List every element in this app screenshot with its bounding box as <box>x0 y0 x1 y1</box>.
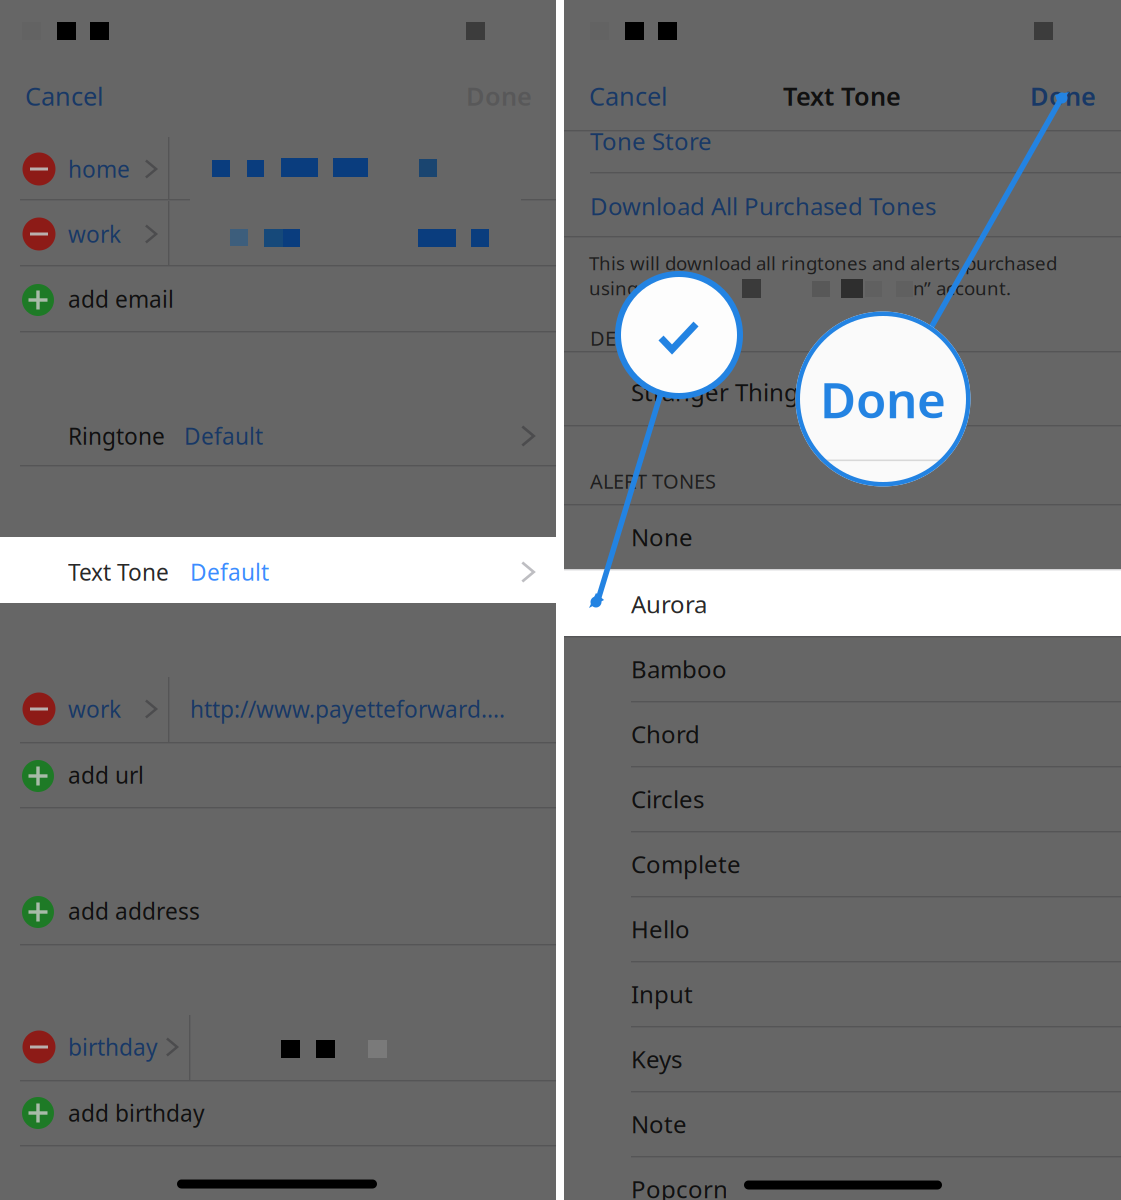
staticText: Popcorn <box>631 1173 728 1200</box>
button[interactable]: None <box>564 504 1121 569</box>
button[interactable]: Remove birthday <box>22 1030 55 1063</box>
staticText: http://www.payetteforward.... <box>190 694 505 724</box>
staticText: Aurora <box>631 588 707 620</box>
button[interactable]: Complete <box>564 831 1121 896</box>
button[interactable]: Text Tone <box>0 537 556 603</box>
button[interactable]: add address <box>0 879 556 944</box>
staticText: Bamboo <box>631 653 727 685</box>
staticText: add email <box>68 284 174 314</box>
staticText: ALERT TONES <box>590 468 716 494</box>
button[interactable]: Chord <box>564 701 1121 766</box>
button[interactable]: Bamboo <box>564 636 1121 701</box>
button[interactable]: Remove home email <box>22 152 55 185</box>
button[interactable]: Done <box>795 311 970 486</box>
button[interactable]: add birthday <box>0 1081 556 1145</box>
button[interactable]: Done <box>452 74 546 120</box>
staticText: Ringtone <box>68 421 165 451</box>
staticText: using the “ <box>589 276 685 300</box>
staticText: None <box>631 521 693 553</box>
button[interactable]: Add birthday <box>22 1097 54 1129</box>
staticText: Complete <box>631 848 741 880</box>
staticText: Keys <box>631 1043 682 1075</box>
button[interactable]: add email <box>0 266 556 331</box>
button[interactable]: Remove work email <box>22 217 55 250</box>
staticText: work <box>68 219 121 249</box>
button[interactable]: Note <box>564 1091 1121 1156</box>
button[interactable]: birthday <box>56 1017 187 1078</box>
button[interactable]: Circles <box>564 766 1121 831</box>
staticText: Default <box>190 557 269 587</box>
staticText: Cancel <box>25 79 104 113</box>
button[interactable]: Download All Purchased Tones <box>564 173 1121 236</box>
button[interactable]: home <box>56 140 166 198</box>
button[interactable]: Add email <box>22 284 54 316</box>
button[interactable]: Remove work url <box>22 692 55 725</box>
staticText: n” account. <box>913 276 1011 300</box>
staticText: Done <box>466 79 532 113</box>
button[interactable]: Cancel <box>10 74 118 120</box>
button[interactable]: Tone Store <box>564 122 1121 172</box>
staticText: Text Tone <box>783 79 901 113</box>
staticText: Chord <box>631 718 700 750</box>
button[interactable]: Ringtone <box>0 404 556 465</box>
staticText: Tone Store <box>590 125 712 157</box>
staticText: Done <box>1030 79 1096 113</box>
button[interactable]: Add address <box>22 896 54 928</box>
staticText: add address <box>68 896 200 926</box>
staticText: add url <box>68 760 144 790</box>
staticText: Done <box>820 366 946 432</box>
button[interactable]: Add url <box>22 760 54 792</box>
staticText: Download All Purchased Tones <box>590 190 936 222</box>
button[interactable]: Selected tone check mark <box>618 274 740 396</box>
staticText: Input <box>631 978 693 1010</box>
staticText: Circles <box>631 783 704 815</box>
staticText: home <box>68 154 130 184</box>
staticText: birthday <box>68 1032 158 1062</box>
staticText: Text Tone <box>68 557 169 587</box>
staticText: Hello <box>631 913 690 945</box>
staticText: add birthday <box>68 1098 205 1128</box>
button[interactable]: Popcorn <box>564 1156 1121 1200</box>
button[interactable]: Stranger Things <box>564 359 1121 424</box>
button[interactable]: Input <box>564 961 1121 1026</box>
button[interactable]: work <box>56 679 166 740</box>
staticText: Stranger Things <box>631 376 810 408</box>
staticText: work <box>68 694 121 724</box>
button[interactable]: Done <box>1016 74 1110 120</box>
button[interactable]: add url <box>0 743 556 807</box>
staticText: Note <box>631 1108 687 1140</box>
button[interactable]: Cancel <box>574 74 682 120</box>
button[interactable]: Aurora <box>564 571 1121 636</box>
staticText: DEFAULT <box>590 325 675 351</box>
button[interactable]: work <box>56 203 166 263</box>
staticText: Cancel <box>589 79 668 113</box>
staticText: Default <box>184 421 263 451</box>
button[interactable]: Hello <box>564 896 1121 961</box>
staticText: This will download all ringtones and ale… <box>589 251 1057 275</box>
button[interactable]: Keys <box>564 1026 1121 1091</box>
